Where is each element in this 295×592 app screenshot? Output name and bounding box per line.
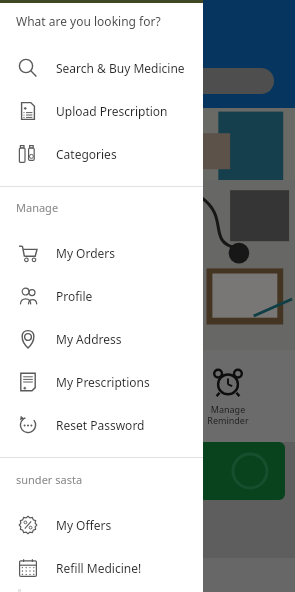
staticText: Search for medicine and otc ...	[48, 74, 204, 89]
staticText: Profile	[56, 288, 93, 304]
button[interactable]: Reset Password	[0, 403, 203, 446]
staticText: Upload Prescription	[56, 103, 168, 119]
button[interactable]: My Offers	[0, 503, 203, 546]
staticText: sunder sasta	[16, 472, 83, 487]
staticText: Refill Medicine!	[56, 560, 142, 576]
staticText: Manage	[16, 200, 59, 215]
button[interactable]: Profile	[0, 274, 203, 317]
staticText: My Prescriptions	[56, 374, 150, 390]
button[interactable]: Refill Medicine!	[0, 546, 203, 589]
staticText: Search & Buy Medicine	[56, 60, 185, 76]
staticText: What are you looking for?	[16, 13, 161, 29]
staticText: Categories	[56, 146, 117, 162]
button[interactable]: My Address	[0, 317, 203, 360]
staticText: Reset Password	[56, 417, 145, 433]
staticText: My Address	[56, 331, 122, 347]
staticText: Order on WhatsApp	[24, 463, 138, 479]
button[interactable]: Search & Buy Medicine	[0, 46, 203, 89]
button[interactable]: Categories	[0, 132, 203, 175]
button[interactable]: My Orders	[0, 231, 203, 274]
staticText: My Orders	[56, 245, 116, 261]
button[interactable]: Upload Prescription	[0, 89, 203, 132]
button[interactable]	[0, 589, 203, 592]
staticText: Manage Reminder	[207, 403, 249, 426]
staticText: My Offers	[56, 517, 112, 533]
button[interactable]: My Prescriptions	[0, 360, 203, 403]
